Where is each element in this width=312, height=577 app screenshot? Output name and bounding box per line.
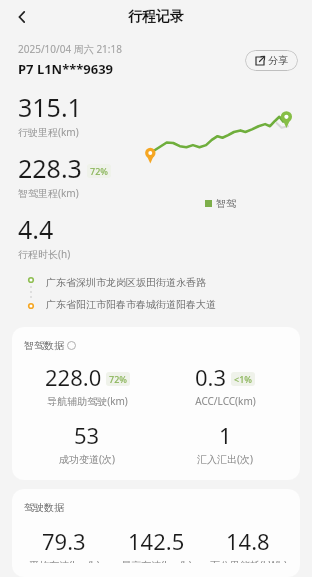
staticText: 智驾 <box>216 197 236 210</box>
staticText: 智驾数据 <box>24 339 64 352</box>
staticText: 142.5 <box>128 526 185 556</box>
staticText: 智驾里程(km) <box>18 186 79 200</box>
staticText: 4.4 <box>18 212 54 246</box>
staticText: 导航辅助驾驶(km) <box>47 394 128 408</box>
staticText: 平均车速(km/h) <box>29 558 100 563</box>
staticText: 0.3 <box>195 362 227 392</box>
staticText: 1 <box>219 420 232 450</box>
staticText: 驾驶数据 <box>24 501 64 514</box>
button[interactable]: 分享 <box>245 50 298 71</box>
staticText: 228.0 <box>45 362 102 392</box>
staticText: ACC/LCC(km) <box>195 394 256 408</box>
staticText: 分享 <box>268 54 288 67</box>
staticText: 行程记录 <box>128 8 184 26</box>
staticText: 2025/10/04 周六 21:18 <box>18 42 122 56</box>
staticText: 行驶里程(km) <box>18 125 79 139</box>
staticText: 79.3 <box>42 526 86 556</box>
staticText: 广东省阳江市阳春市春城街道阳春大道 <box>46 298 216 311</box>
staticText: 成功变道(次) <box>59 452 115 466</box>
staticText: P7 L1N***9639 <box>18 60 114 78</box>
staticText: 行程时长(h) <box>18 247 71 261</box>
staticText: 72% <box>109 373 127 385</box>
button[interactable]: 返回 <box>6 1 38 33</box>
staticText: 百公里能耗(kWh) <box>210 558 287 563</box>
staticText: 228.3 <box>18 151 82 185</box>
button[interactable]: 驾驶数据 <box>12 489 300 577</box>
staticText: 汇入汇出(次) <box>197 452 253 466</box>
staticText: 广东省深圳市龙岗区坂田街道永香路 <box>46 276 206 289</box>
button[interactable]: 智驾数据 <box>12 327 300 480</box>
staticText: <1% <box>234 373 252 385</box>
staticText: 最高车速(km/h) <box>121 558 192 563</box>
staticText: 53 <box>74 420 100 450</box>
staticText: 315.1 <box>18 90 82 124</box>
staticText: 72% <box>90 165 108 177</box>
staticText: 14.8 <box>226 526 270 556</box>
